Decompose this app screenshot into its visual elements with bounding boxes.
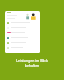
button[interactable]: Illustration: [5, 11, 40, 53]
button[interactable]: [7, 25, 38, 30]
button[interactable]: [7, 30, 38, 35]
staticText: Leistungen im Blick behalten: [16, 58, 48, 68]
button[interactable]: [7, 40, 38, 45]
button[interactable]: [7, 20, 38, 25]
button[interactable]: [7, 45, 38, 50]
other: Illustration: [24, 13, 38, 20]
button[interactable]: [7, 35, 38, 40]
